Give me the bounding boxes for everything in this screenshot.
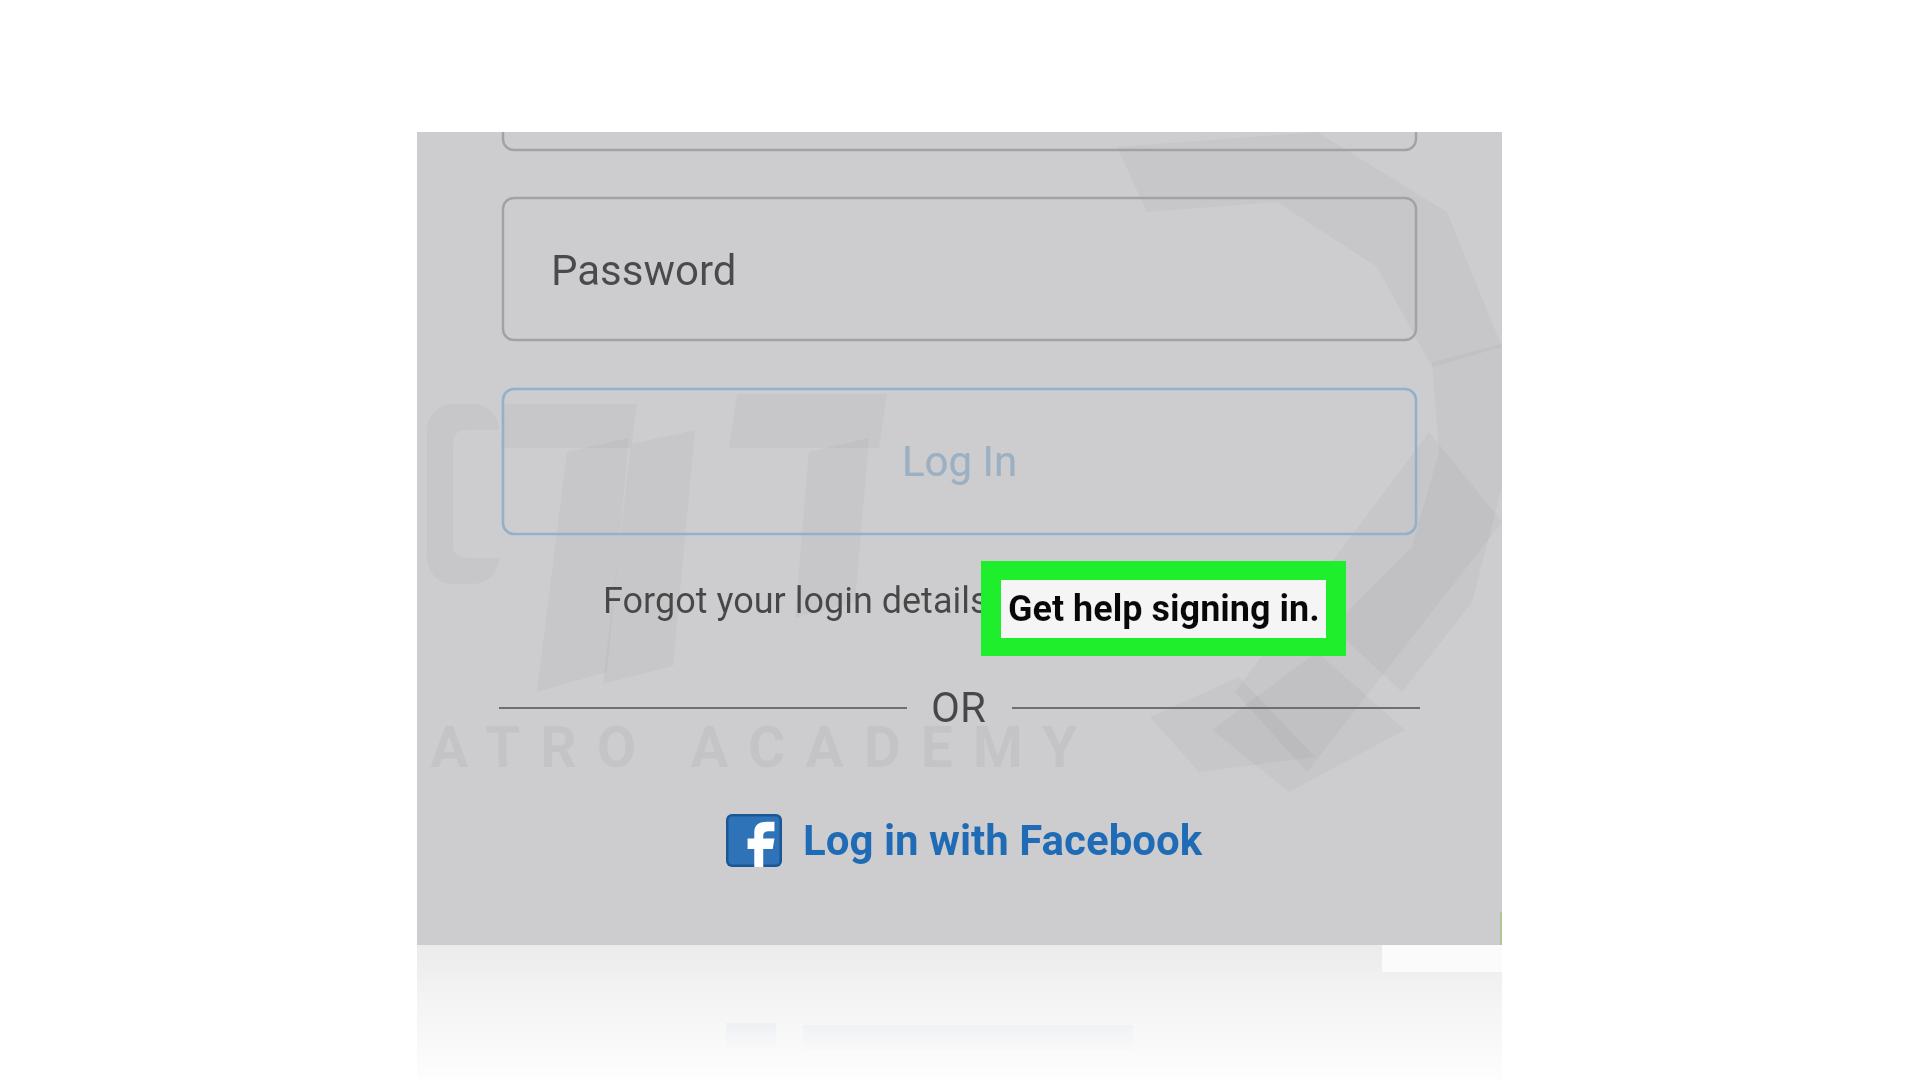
button[interactable]: Facebook: [726, 814, 1203, 867]
staticText: ATRO ACADEMY: [430, 714, 1098, 781]
staticText: Log In: [902, 437, 1018, 486]
button[interactable]: Forgot your login details?: [603, 580, 1006, 622]
other: Facebook: [726, 814, 782, 867]
staticText: Password: [551, 246, 737, 295]
staticText: OR: [931, 683, 986, 732]
button[interactable]: Get help signing in.: [981, 561, 1346, 656]
staticText: Get help signing in.: [1008, 588, 1320, 630]
staticText: Log in with Facebook: [803, 816, 1203, 865]
button[interactable]: Log In: [503, 389, 1416, 534]
button[interactable]: Password field: [503, 198, 1416, 340]
